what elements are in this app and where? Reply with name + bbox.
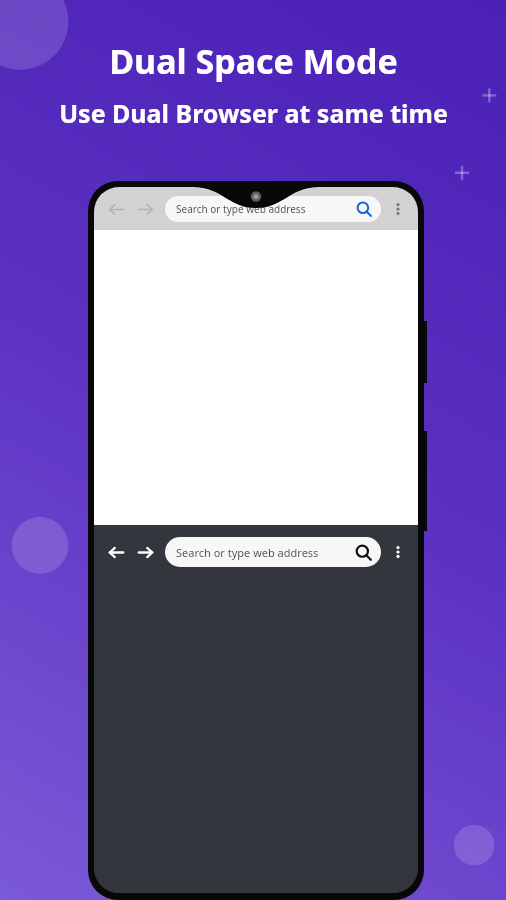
- button[interactable]: Forward: [132, 196, 158, 222]
- staticText: Search or type web address: [176, 545, 355, 560]
- button[interactable]: More options: [387, 198, 409, 220]
- button[interactable]: [94, 579, 418, 893]
- staticText: Dual Space Mode: [109, 38, 398, 84]
- button[interactable]: Back: [103, 196, 129, 222]
- staticText: Use Dual Browser at same time: [59, 96, 448, 130]
- button[interactable]: Back: [88, 181, 424, 900]
- button[interactable]: Search or type web address: [165, 537, 381, 567]
- button[interactable]: Forward: [132, 539, 158, 565]
- staticText: Search or type web address: [176, 202, 356, 216]
- button[interactable]: More options: [387, 541, 409, 563]
- button[interactable]: Search or type web address: [165, 196, 381, 222]
- button[interactable]: Back: [103, 539, 129, 565]
